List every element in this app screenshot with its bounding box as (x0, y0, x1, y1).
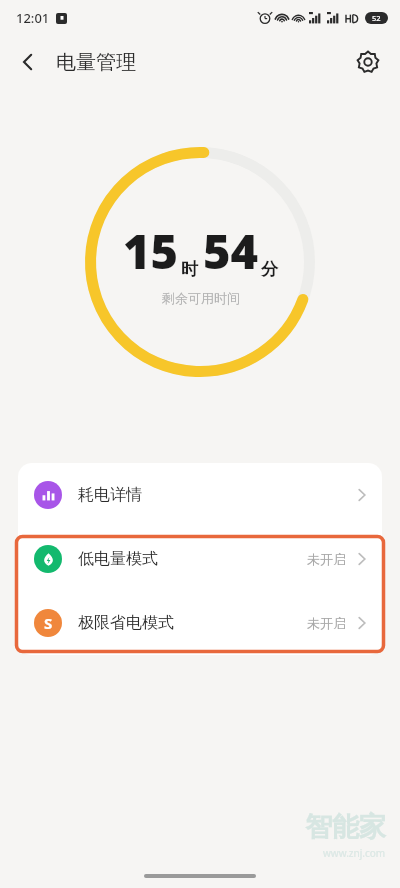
staticText: 极限省电模式 (78, 613, 307, 633)
staticText: 未开启 (307, 615, 346, 631)
button[interactable]: 低电量模式 (18, 527, 382, 591)
button[interactable]: Settings (346, 40, 390, 84)
button[interactable]: Back (6, 40, 50, 84)
staticText: 12:01 (16, 9, 50, 27)
staticText: 时 (181, 259, 198, 280)
staticText: 54 (203, 219, 259, 283)
staticText: 智能家 (305, 810, 386, 844)
staticText: S (44, 613, 53, 633)
staticText: 剩余可用时间 (162, 290, 240, 306)
staticText: 电量管理 (56, 50, 136, 75)
staticText: 低电量模式 (78, 549, 307, 569)
staticText: 15 (123, 219, 179, 283)
staticText: 未开启 (307, 551, 346, 567)
staticText: 分 (261, 259, 278, 280)
staticText: 耗电详情 (78, 485, 358, 505)
staticText: 52 (372, 13, 381, 23)
button[interactable]: S (18, 591, 382, 655)
staticText: www.znj.com (323, 846, 386, 860)
button[interactable]: 耗电详情 (18, 463, 382, 527)
